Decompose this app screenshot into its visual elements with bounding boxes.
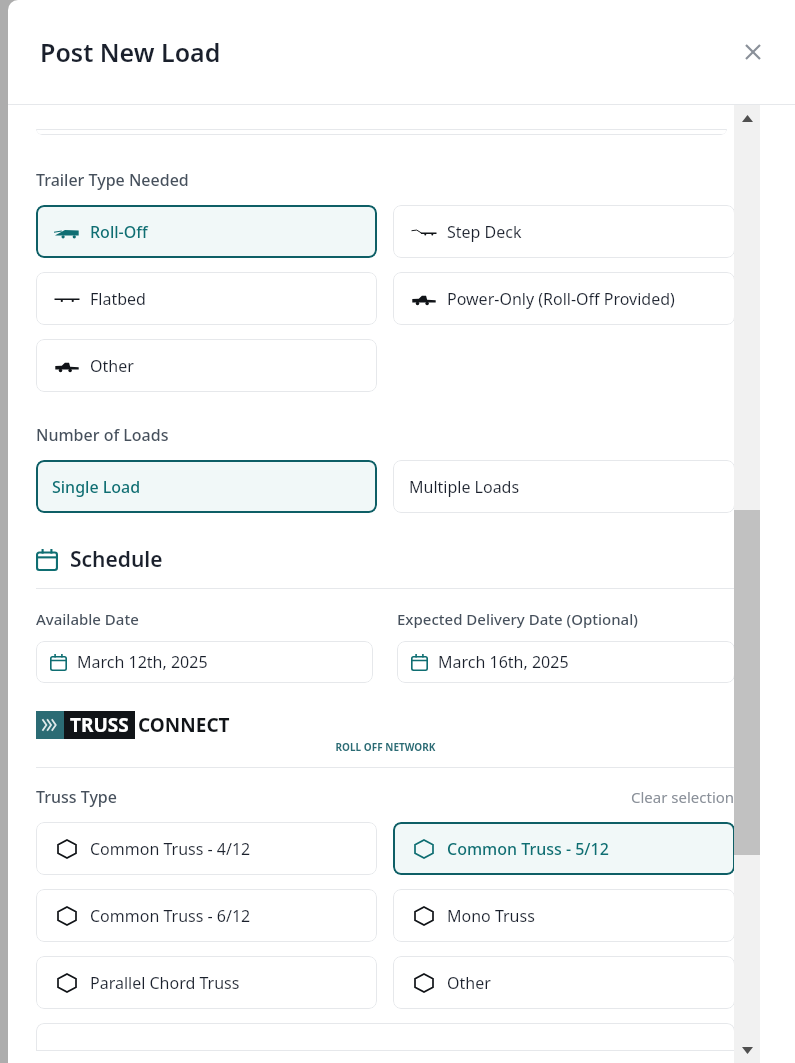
button[interactable]: March 16th, 2025 xyxy=(397,641,735,683)
staticText: Other xyxy=(90,355,134,377)
button[interactable]: Power-Only (Roll-Off Provided) xyxy=(393,272,735,325)
staticText: Common Truss - 5/12 xyxy=(447,838,609,860)
staticText: TRUSS xyxy=(70,712,129,738)
staticText: Mono Truss xyxy=(447,905,535,927)
staticText: Roll-Off xyxy=(90,221,148,243)
staticText: Single Load xyxy=(52,476,141,498)
staticText: ROLL OFF NETWORK xyxy=(36,740,735,754)
button[interactable]: Roll-Off xyxy=(36,205,377,258)
button[interactable]: Common Truss - 6/12 xyxy=(36,889,377,942)
button[interactable]: Scroll down xyxy=(734,1037,760,1063)
staticText: Truss Type xyxy=(36,786,117,808)
staticText: Available Date xyxy=(36,609,139,629)
staticText: Post New Load xyxy=(40,35,221,69)
staticText: March 16th, 2025 xyxy=(438,651,569,673)
button[interactable]: Single Load xyxy=(36,460,377,513)
button[interactable]: Step Deck xyxy=(393,205,735,258)
button[interactable]: Common Truss - 5/12 xyxy=(393,822,735,875)
staticText: March 12th, 2025 xyxy=(77,651,208,673)
staticText: Common Truss - 4/12 xyxy=(90,838,251,860)
button[interactable]: March 12th, 2025 xyxy=(36,641,373,683)
button[interactable]: Multiple Loads xyxy=(393,460,735,513)
button[interactable]: Other xyxy=(36,339,377,392)
button[interactable]: Clear selection xyxy=(631,787,735,807)
staticText: Common Truss - 6/12 xyxy=(90,905,251,927)
staticText: CONNECT xyxy=(138,712,230,738)
staticText: Other xyxy=(447,972,491,994)
staticText: Expected Delivery Date (Optional) xyxy=(397,609,638,629)
button[interactable]: Other xyxy=(393,956,735,1009)
staticText: Number of Loads xyxy=(36,424,169,446)
staticText: Power-Only (Roll-Off Provided) xyxy=(447,288,675,310)
button[interactable]: TRUSS xyxy=(36,711,735,755)
staticText: Trailer Type Needed xyxy=(36,169,189,191)
button[interactable]: Parallel Chord Truss xyxy=(36,956,377,1009)
staticText: Schedule xyxy=(70,545,163,574)
staticText: Step Deck xyxy=(447,221,522,243)
button[interactable]: Mono Truss xyxy=(393,889,735,942)
button[interactable]: Common Truss - 4/12 xyxy=(36,822,377,875)
staticText: Parallel Chord Truss xyxy=(90,972,240,994)
button[interactable]: Scroll up xyxy=(734,105,760,131)
button[interactable]: Close xyxy=(733,32,773,72)
button[interactable]: Flatbed xyxy=(36,272,377,325)
staticText: Multiple Loads xyxy=(409,476,520,498)
staticText: Flatbed xyxy=(90,288,146,310)
